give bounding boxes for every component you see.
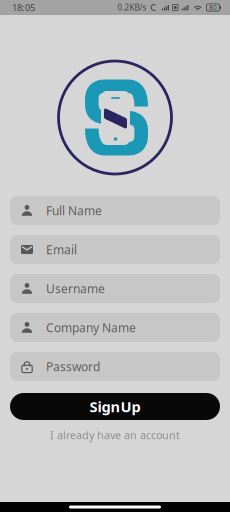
staticText: Password bbox=[46, 358, 100, 374]
staticText: 18:05 bbox=[12, 1, 35, 14]
button[interactable]: Company Name bbox=[10, 313, 220, 342]
staticText: Full Name bbox=[46, 202, 102, 218]
button[interactable]: SignUp bbox=[10, 393, 220, 420]
button[interactable]: Email bbox=[10, 235, 220, 264]
button[interactable]: Password bbox=[10, 352, 220, 381]
staticText: I already have an account bbox=[50, 428, 180, 442]
staticText: 0.2KB/s bbox=[118, 2, 147, 13]
staticText: Email bbox=[46, 241, 77, 257]
button[interactable]: Full Name bbox=[10, 196, 220, 225]
button[interactable]: Username bbox=[10, 274, 220, 303]
staticText: SignUp bbox=[89, 397, 140, 416]
staticText: Company Name bbox=[46, 319, 136, 335]
staticText: Username bbox=[46, 280, 105, 296]
button[interactable]: I already have an account bbox=[50, 428, 180, 442]
staticText: 80 bbox=[209, 3, 217, 12]
